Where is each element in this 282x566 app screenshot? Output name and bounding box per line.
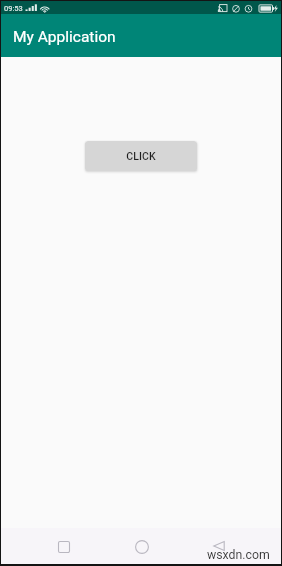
staticText: wsxdn.com [207, 548, 270, 562]
staticText: CLICK [126, 150, 156, 162]
staticText: 09:53 [4, 4, 23, 13]
staticText: My Application [13, 28, 116, 46]
button[interactable]: Recent apps [48, 531, 80, 563]
button[interactable]: Back [203, 530, 235, 562]
button[interactable]: Home [126, 531, 158, 563]
button[interactable]: CLICK [85, 141, 197, 171]
